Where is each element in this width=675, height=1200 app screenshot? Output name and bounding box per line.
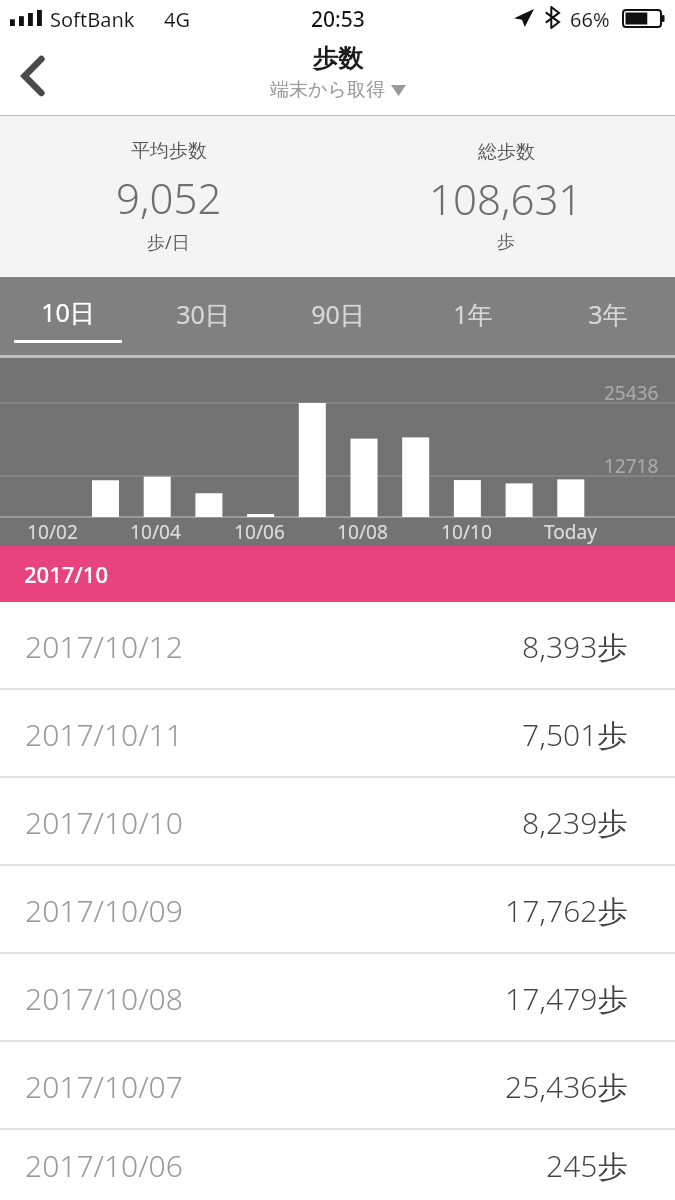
button[interactable]: 1年	[405, 277, 540, 355]
staticText: 4G	[164, 6, 190, 33]
staticText: 2017/10/10	[25, 802, 183, 843]
button[interactable]: 2017/10/06	[0, 1130, 675, 1200]
staticText: 25436	[604, 380, 659, 406]
staticText: 20:53	[311, 5, 365, 34]
button[interactable]: Back	[0, 36, 66, 115]
staticText: 2017/10/12	[25, 626, 183, 667]
button[interactable]: 3年	[540, 277, 675, 355]
staticText: 10/06	[234, 519, 285, 545]
button[interactable]: 30日	[135, 277, 270, 355]
staticText: 10/08	[337, 519, 388, 545]
staticText: 3年	[588, 297, 628, 331]
staticText: 90日	[311, 297, 365, 331]
staticText: 歩	[497, 231, 515, 254]
staticText: 歩/日	[147, 230, 190, 255]
staticText: 8,239歩	[522, 802, 628, 843]
staticText: Today	[544, 519, 597, 545]
staticText: 歩数	[313, 43, 363, 74]
staticText: 245歩	[546, 1145, 628, 1186]
staticText: 9,052	[116, 169, 222, 226]
button[interactable]: 2017/10/08	[0, 954, 675, 1042]
staticText: 総歩数	[478, 140, 535, 164]
staticText: 1年	[453, 297, 493, 331]
button[interactable]: 90日	[270, 277, 405, 355]
staticText: 2017/10/11	[25, 714, 183, 755]
button[interactable]: 2017/10/11	[0, 690, 675, 778]
staticText: 端末から取得	[270, 78, 385, 102]
button[interactable]: 2017/10/10	[0, 778, 675, 866]
staticText: 平均歩数	[131, 139, 207, 163]
staticText: 10/10	[441, 519, 492, 545]
staticText: 2017/10/08	[25, 978, 183, 1019]
staticText: 10/02	[27, 519, 78, 545]
staticText: 12718	[604, 453, 659, 479]
button[interactable]: 2017/10/07	[0, 1042, 675, 1130]
staticText: 2017/10/09	[25, 890, 183, 931]
staticText: 108,631	[429, 170, 583, 227]
staticText: 17,479歩	[505, 978, 628, 1019]
staticText: 8,393歩	[522, 626, 628, 667]
staticText: 17,762歩	[505, 890, 628, 931]
staticText: SoftBank	[50, 6, 135, 33]
staticText: 2017/10/06	[25, 1145, 183, 1186]
staticText: 2017/10	[24, 559, 108, 589]
button[interactable]: 10日	[0, 277, 135, 355]
button[interactable]: 2017/10/09	[0, 866, 675, 954]
button[interactable]: 端末から取得	[270, 78, 406, 102]
staticText: 66%	[570, 6, 610, 33]
staticText: 25,436歩	[505, 1066, 628, 1107]
staticText: 30日	[176, 297, 230, 331]
staticText: 7,501歩	[522, 714, 628, 755]
staticText: 2017/10/07	[25, 1066, 183, 1107]
staticText: 10日	[41, 295, 95, 329]
button[interactable]: 2017/10/12	[0, 602, 675, 690]
staticText: 10/04	[130, 519, 181, 545]
button[interactable]: 2017/10	[0, 546, 675, 602]
